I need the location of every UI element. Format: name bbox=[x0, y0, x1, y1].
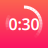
staticText: 0:30 bbox=[8, 13, 39, 35]
